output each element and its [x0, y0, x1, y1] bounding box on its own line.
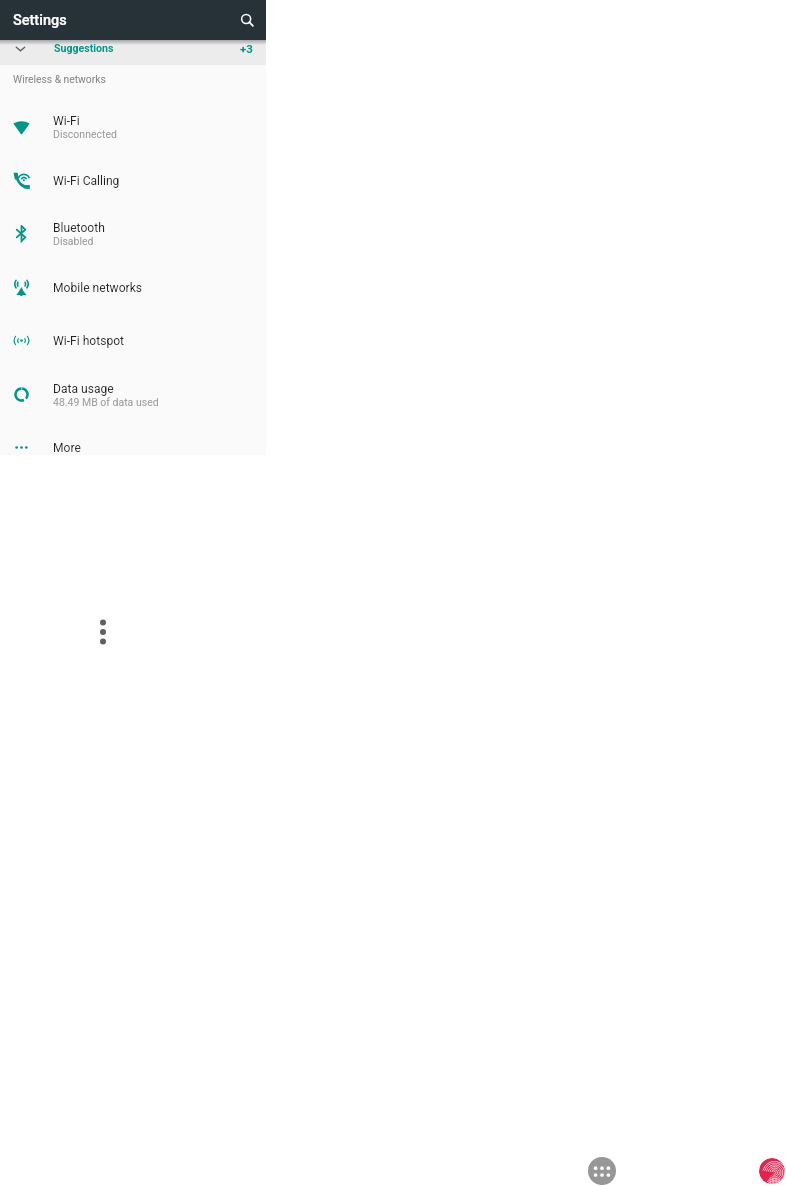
staticText: Wi-Fi Calling [53, 174, 120, 188]
staticText: +3 [240, 42, 253, 55]
button[interactable]: Suggestions [0, 40, 266, 65]
button[interactable]: Mobile networks [0, 260, 266, 314]
button[interactable]: Wi-Fi Calling [0, 153, 266, 207]
staticText: Mobile networks [53, 281, 143, 295]
button[interactable]: More [0, 420, 266, 474]
button[interactable]: Bluetooth [0, 206, 266, 260]
staticText: Wi-Fi hotspot [53, 334, 125, 348]
staticText: 48.49 MB of data used [53, 396, 159, 408]
button[interactable]: Fingerprint [759, 1158, 785, 1184]
staticText: Suggestions [54, 42, 114, 54]
staticText: Settings [13, 12, 67, 29]
button[interactable]: Search [232, 5, 262, 35]
staticText: Disabled [53, 235, 94, 247]
staticText: Disconnected [53, 128, 117, 140]
staticText: Wireless & networks [13, 73, 106, 85]
button[interactable]: Wi-Fi [0, 99, 266, 153]
staticText: Bluetooth [53, 221, 105, 235]
button[interactable]: Apps [588, 1157, 616, 1185]
staticText: Data usage [53, 382, 114, 396]
button[interactable]: Data usage [0, 367, 266, 421]
staticText: Wi-Fi [53, 114, 80, 128]
staticText: More [53, 441, 81, 455]
button[interactable]: More options [89, 618, 117, 646]
button[interactable]: Wi-Fi hotspot [0, 313, 266, 367]
